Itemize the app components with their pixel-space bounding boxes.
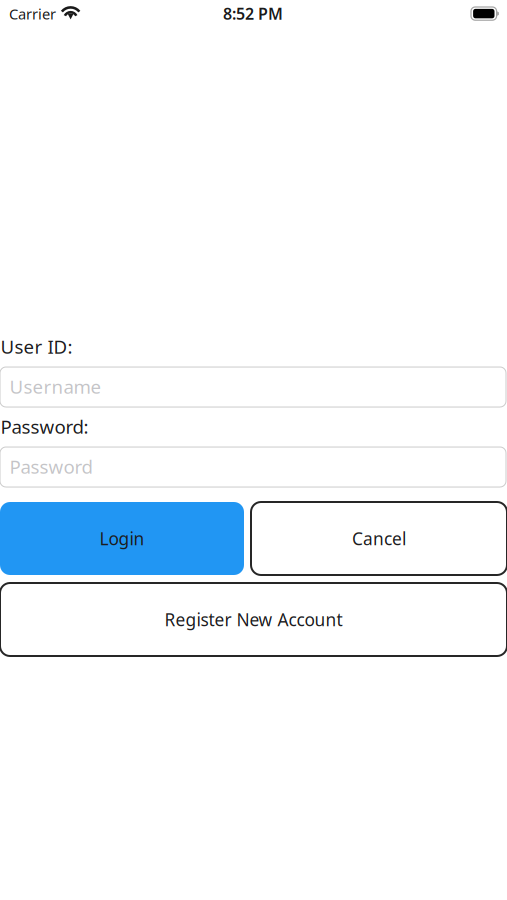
button[interactable]: Login (0, 502, 244, 575)
staticText: Password: (0, 414, 88, 439)
staticText: Username (9, 374, 101, 399)
staticText: Password (9, 454, 92, 479)
staticText: User ID: (0, 334, 72, 359)
staticText: 8:52 PM (223, 3, 283, 24)
staticText: Register New Account (164, 608, 342, 631)
staticText: Carrier (9, 4, 56, 23)
staticText: Login (99, 527, 144, 550)
button[interactable]: Cancel (251, 502, 507, 575)
button[interactable]: Register New Account (0, 583, 507, 656)
staticText: Cancel (352, 527, 406, 550)
